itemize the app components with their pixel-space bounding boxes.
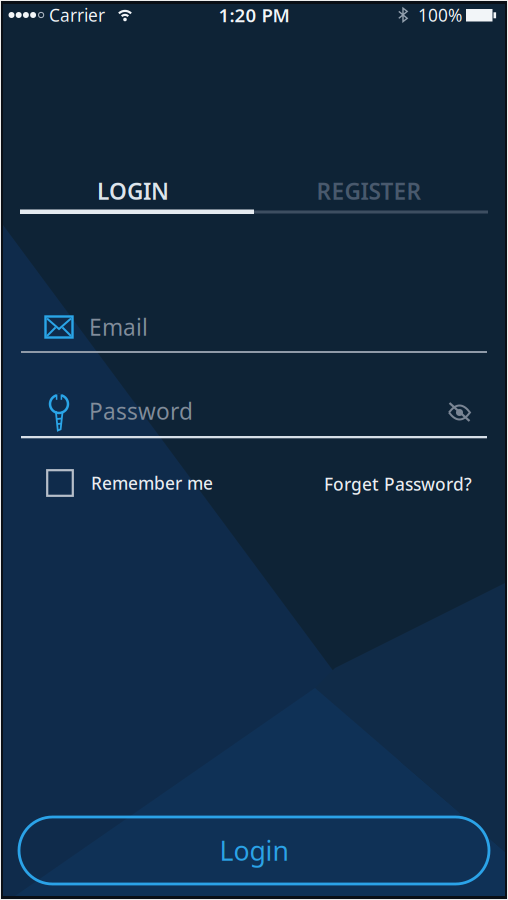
staticText: Password [89, 396, 193, 426]
staticText: REGISTER [316, 176, 421, 206]
button[interactable]: Email [19, 306, 489, 354]
button[interactable]: Forget Password? [272, 472, 472, 495]
staticText: LOGIN [97, 176, 169, 206]
button[interactable]: LOGIN [43, 171, 223, 211]
staticText: Remember me [91, 471, 213, 494]
button[interactable]: Login [19, 817, 489, 884]
staticText: Email [89, 312, 148, 342]
staticText: Login [219, 833, 288, 868]
button[interactable]: Password [19, 389, 489, 439]
button[interactable] [441, 396, 477, 428]
button[interactable]: Remember me [46, 469, 256, 497]
staticText: 100% [418, 3, 462, 26]
staticText: Carrier [49, 3, 105, 26]
staticText: Forget Password? [324, 472, 472, 495]
staticText: 1:20 PM [218, 3, 289, 27]
button[interactable]: REGISTER [279, 171, 459, 211]
